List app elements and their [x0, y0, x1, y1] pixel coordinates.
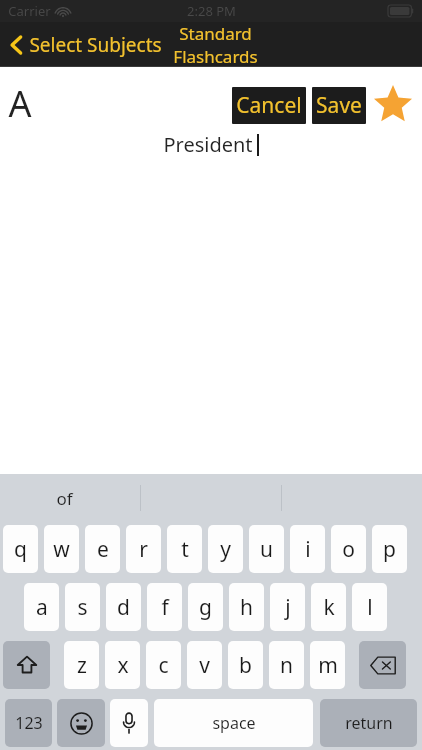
button[interactable]: l: [352, 583, 387, 631]
staticText: g: [199, 593, 212, 622]
staticText: q: [14, 535, 27, 564]
button[interactable]: return: [320, 699, 417, 747]
button[interactable]: Dictation: [110, 699, 148, 747]
staticText: y: [220, 535, 231, 564]
button[interactable]: e: [85, 525, 120, 573]
staticText: 2:28 PM: [187, 2, 236, 20]
button[interactable]: b: [228, 641, 263, 689]
staticText: Select Subjects: [29, 32, 162, 58]
staticText: n: [280, 651, 293, 680]
staticText: Standard: [179, 22, 252, 45]
staticText: d: [117, 593, 130, 622]
button[interactable]: t: [167, 525, 202, 573]
button[interactable]: r: [126, 525, 161, 573]
staticText: return: [345, 712, 393, 734]
staticText: m: [318, 651, 338, 680]
staticText: j: [285, 593, 291, 622]
staticText: space: [212, 712, 256, 734]
button[interactable]: Backspace: [359, 641, 406, 689]
button[interactable]: w: [44, 525, 79, 573]
staticText: Cancel: [236, 91, 302, 120]
staticText: President: [163, 131, 253, 158]
staticText: b: [239, 651, 252, 680]
staticText: Save: [316, 91, 362, 120]
button[interactable]: h: [229, 583, 264, 631]
button[interactable]: c: [146, 641, 181, 689]
staticText: t: [181, 535, 189, 564]
staticText: Carrier: [8, 2, 51, 20]
button[interactable]: space: [154, 699, 313, 747]
button[interactable]: 123: [5, 699, 52, 747]
button[interactable]: Favorite: [370, 82, 416, 128]
button[interactable]: Save: [312, 87, 366, 124]
staticText: k: [323, 593, 335, 622]
button[interactable]: d: [106, 583, 141, 631]
button[interactable]: i: [290, 525, 325, 573]
button[interactable]: u: [249, 525, 284, 573]
staticText: u: [260, 535, 273, 564]
button[interactable]: a: [24, 583, 59, 631]
staticText: v: [199, 651, 210, 680]
button[interactable]: of: [46, 481, 83, 516]
button[interactable]: q: [3, 525, 38, 573]
button[interactable]: n: [269, 641, 304, 689]
staticText: p: [383, 535, 396, 564]
button[interactable]: Emoji: [57, 699, 105, 747]
staticText: i: [305, 535, 311, 564]
button[interactable]: f: [147, 583, 182, 631]
staticText: o: [342, 535, 355, 564]
staticText: h: [240, 593, 253, 622]
staticText: 123: [15, 712, 43, 734]
button[interactable]: p: [372, 525, 407, 573]
button[interactable]: Cancel: [232, 87, 306, 124]
staticText: of: [56, 487, 73, 510]
staticText: x: [117, 651, 129, 680]
staticText: l: [367, 593, 373, 622]
button[interactable]: Select Subjects: [0, 28, 170, 62]
staticText: z: [77, 651, 87, 680]
button[interactable]: v: [187, 641, 222, 689]
button[interactable]: z: [64, 641, 99, 689]
button[interactable]: k: [311, 583, 346, 631]
staticText: A: [8, 79, 32, 128]
staticText: e: [97, 535, 109, 564]
button[interactable]: s: [65, 583, 100, 631]
button[interactable]: Shift: [3, 641, 50, 689]
staticText: s: [77, 593, 88, 622]
staticText: Flashcards: [173, 45, 258, 67]
button[interactable]: g: [188, 583, 223, 631]
button[interactable]: o: [331, 525, 366, 573]
staticText: w: [53, 535, 70, 564]
staticText: r: [139, 535, 148, 564]
button[interactable]: x: [105, 641, 140, 689]
button[interactable]: j: [270, 583, 305, 631]
button[interactable]: y: [208, 525, 243, 573]
staticText: a: [36, 593, 48, 622]
button[interactable]: m: [310, 641, 345, 689]
staticText: c: [158, 651, 169, 680]
staticText: f: [161, 593, 169, 622]
